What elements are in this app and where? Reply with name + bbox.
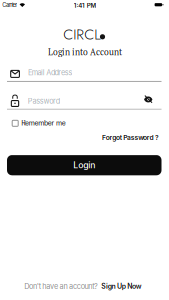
button[interactable]: Remember me	[12, 118, 64, 128]
staticText: Login into Account	[48, 46, 122, 58]
button[interactable]: Show password	[144, 95, 153, 103]
staticText: Forgot Password ?	[102, 134, 159, 142]
button[interactable]: Sign Up Now	[101, 282, 142, 290]
staticText: Remember me	[21, 119, 66, 127]
staticText: Carrier	[2, 1, 17, 8]
button[interactable]: Email Address	[7, 64, 161, 82]
staticText: Login	[73, 160, 95, 170]
button[interactable]: Password	[7, 92, 161, 110]
staticText: 1:41 PM	[74, 2, 96, 9]
staticText: CIRCL	[63, 24, 100, 45]
button[interactable]: Forgot Password ?	[102, 134, 159, 142]
staticText: Don't have an account?	[24, 282, 98, 291]
staticText: Email Address	[28, 68, 72, 77]
button[interactable]: Login	[7, 155, 161, 175]
staticText: Password	[28, 97, 60, 106]
staticText: Sign Up Now	[101, 282, 142, 290]
